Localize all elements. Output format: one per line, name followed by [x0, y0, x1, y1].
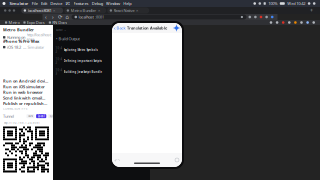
button[interactable]: Translate — [172, 23, 181, 33]
staticText: Help — [123, 1, 131, 6]
button[interactable]: Extension — [288, 21, 291, 24]
button[interactable]: Local — [36, 114, 46, 118]
button[interactable]: Back — [113, 155, 121, 165]
staticText: iPhone 16 Pro Max — [3, 38, 39, 44]
staticText: localhost — [79, 14, 94, 20]
staticText: ⌂ — [65, 14, 68, 20]
button[interactable]: Run on Android device/emulator — [3, 77, 56, 85]
staticText: Build Output — [58, 36, 79, 41]
staticText: React Native — [114, 8, 135, 13]
button[interactable]: Run in web browser — [3, 88, 56, 96]
button[interactable]: Extension — [282, 21, 284, 24]
staticText: — Simulator — [23, 44, 45, 50]
staticText: Window — [106, 1, 120, 6]
staticText: Wed 10:42 — [287, 1, 305, 6]
staticText: ▾ — [56, 37, 57, 40]
button[interactable]: Metro — [3, 20, 21, 25]
staticText: File — [32, 1, 38, 6]
button[interactable]: Navigate — [56, 14, 63, 20]
button[interactable]: Extension — [312, 21, 315, 24]
button[interactable]: Window — [104, 0, 122, 7]
staticText: × — [136, 8, 138, 13]
staticText: 10:42 — [55, 57, 62, 65]
button[interactable]: localhost — [71, 14, 246, 19]
staticText: Local — [38, 114, 45, 118]
staticText: × — [98, 8, 100, 13]
button[interactable]: Publish or republish project… — [3, 99, 56, 107]
staticText: ‹ — [114, 24, 116, 32]
staticText: exp://192.168.1.24:8081 — [4, 121, 41, 124]
staticText: Debug — [92, 1, 103, 6]
staticText: Publish or republish project… — [3, 101, 47, 106]
button[interactable]: Help — [122, 0, 133, 7]
button[interactable]: Extension — [270, 21, 272, 24]
button[interactable]: Tun — [48, 114, 56, 118]
staticText: LAN — [28, 114, 33, 118]
button[interactable]: Run on iOS simulator — [3, 83, 56, 91]
staticText: ‹ — [45, 13, 47, 21]
staticText: Running on — [7, 35, 25, 40]
staticText: × — [53, 8, 55, 13]
button[interactable]: Extension — [276, 21, 278, 24]
staticText: Metro — [8, 20, 19, 25]
staticText: CONNECTION TYPE — [3, 107, 27, 110]
staticText: LOGS ⌄ — [56, 28, 66, 31]
button[interactable]: Apple menu — [0, 0, 8, 7]
staticText: Translation Available — [127, 25, 167, 31]
button[interactable]: Navigate — [63, 14, 70, 20]
button[interactable]: Reload — [173, 155, 181, 165]
staticText: 10:43 — [55, 68, 62, 76]
staticText: Run on Android device/emulator — [3, 78, 48, 84]
button[interactable]: 10:42 — [53, 46, 111, 54]
staticText: Defining important Scripts — [63, 59, 101, 63]
button[interactable]: ‹ — [112, 23, 127, 33]
staticText: Building JavaScript Bundle — [63, 70, 102, 74]
staticText: Run in web browser — [3, 90, 43, 95]
button[interactable]: Navigate — [42, 14, 49, 20]
button[interactable]: Expo Docs — [21, 20, 47, 25]
staticText: + — [310, 7, 313, 14]
staticText: Exploring Metro Symbols — [63, 48, 97, 52]
staticText: Back — [116, 25, 125, 31]
button[interactable]: Features — [72, 0, 90, 7]
staticText: Tun — [49, 114, 54, 118]
button[interactable]: RN Docs — [47, 20, 69, 25]
button[interactable]: 10:42 — [53, 57, 111, 65]
staticText: localhost:8081 — [28, 8, 52, 13]
button[interactable]: Simulator — [8, 0, 30, 7]
button[interactable]: Send link with email… — [3, 94, 56, 102]
staticText: 100% — [268, 1, 277, 6]
button[interactable]: localhost:8081 — [21, 7, 63, 13]
button[interactable]: 10:43 — [53, 68, 111, 76]
button[interactable]: Extension — [300, 21, 303, 24]
staticText: :8081 — [95, 14, 104, 20]
button[interactable]: Device — [49, 0, 64, 7]
button[interactable]: Debug — [90, 0, 104, 7]
button[interactable]: I/O — [64, 0, 72, 7]
button[interactable]: Navigate — [49, 14, 56, 20]
button[interactable]: React Native — [107, 7, 149, 13]
staticText: iOS 18.2 — [7, 44, 21, 50]
staticText: I/O — [65, 1, 70, 6]
button[interactable]: Extension — [306, 21, 309, 24]
button[interactable]: LAN — [26, 114, 35, 118]
staticText: Features — [74, 1, 89, 6]
button[interactable]: Extension — [294, 21, 297, 24]
staticText: Device — [50, 1, 62, 6]
staticText: Send link with email… — [3, 95, 45, 100]
staticText: Tunnel — [3, 113, 14, 119]
staticText: Edit — [41, 1, 47, 6]
staticText: Run on iOS simulator — [3, 84, 45, 89]
staticText: 10:42 — [55, 46, 62, 54]
staticText: RN Docs — [52, 20, 67, 25]
button[interactable]: File — [30, 0, 39, 7]
staticText: ⟳ — [58, 14, 62, 20]
staticText: Simulator — [10, 1, 29, 6]
staticText: ⤺ — [114, 157, 120, 163]
staticText: http://localhost:8081 — [27, 32, 52, 43]
button[interactable]: Edit — [39, 0, 49, 7]
staticText: Metro Bundler — [3, 27, 34, 32]
staticText: › — [52, 13, 54, 21]
button[interactable]: Metro Bundler — [64, 7, 106, 13]
